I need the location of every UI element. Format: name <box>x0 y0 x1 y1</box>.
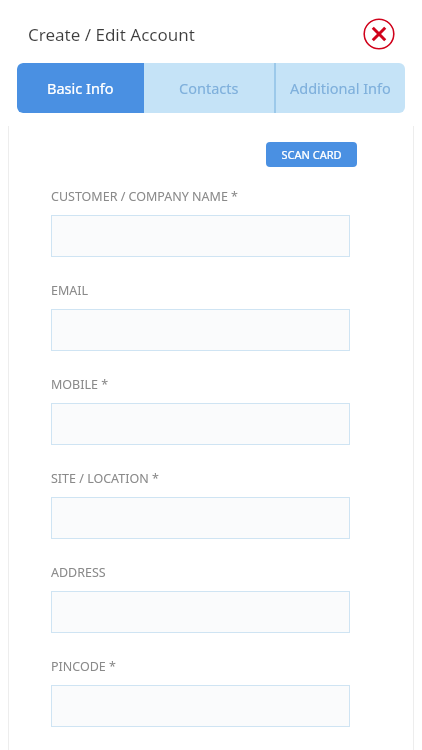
staticText: Contacts <box>179 78 239 98</box>
button[interactable]: Close <box>363 18 395 50</box>
button[interactable] <box>51 685 350 727</box>
staticText: PINCODE * <box>51 658 116 675</box>
staticText: Basic Info <box>47 78 114 98</box>
staticText: ADDRESS <box>51 564 106 581</box>
button[interactable]: Additional Info <box>276 63 405 113</box>
staticText: SCAN CARD <box>281 147 342 162</box>
staticText: MOBILE * <box>51 376 109 393</box>
button[interactable]: Basic Info <box>17 63 144 113</box>
button[interactable]: SCAN CARD <box>266 142 357 167</box>
staticText: CUSTOMER / COMPANY NAME * <box>51 188 238 205</box>
staticText: Additional Info <box>290 78 391 98</box>
button[interactable] <box>51 309 350 351</box>
button[interactable] <box>51 403 350 445</box>
staticText: SITE / LOCATION * <box>51 470 159 487</box>
button[interactable] <box>51 497 350 539</box>
button[interactable] <box>51 591 350 633</box>
staticText: Create / Edit Account <box>28 23 195 46</box>
staticText: EMAIL <box>51 282 89 299</box>
button[interactable]: Contacts <box>144 63 274 113</box>
button[interactable] <box>51 215 350 257</box>
